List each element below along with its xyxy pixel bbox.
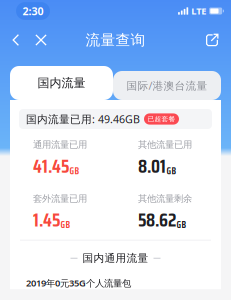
button[interactable]: 国际/港澳台流量 [113,71,221,100]
staticText: 已超套餐 [147,115,175,123]
staticText: 1.45 [33,205,60,235]
staticText: GB [166,164,176,178]
staticText: 2:30 [22,4,43,18]
staticText: GB [69,164,79,178]
button[interactable]: Back [4,25,28,55]
staticText: GB [60,217,70,232]
staticText: 国内通用流量 [82,252,148,265]
staticText: 国内流量 [37,76,85,90]
staticText: 国内流量已用: 49.46GB [26,112,140,126]
staticText: GB [176,217,186,232]
staticText: 套外流量已用 [33,193,87,204]
button[interactable]: Close [28,25,54,55]
staticText: 流量查询 [85,31,145,49]
staticText: LTE [191,5,206,17]
staticText: 其他流量剩余 [138,193,192,204]
staticText: 41.45 [33,151,69,181]
button[interactable]: 国内流量 [10,66,113,100]
staticText: 2019年0元35G个人流量包 [26,277,131,289]
staticText: 8.01 [138,151,166,181]
button[interactable]: Share [198,25,226,55]
staticText: 58.62 [138,205,176,235]
staticText: 国际/港澳台流量 [126,78,207,93]
staticText: 其他流量已用 [138,139,192,150]
staticText: 通用流量已用 [33,139,87,150]
